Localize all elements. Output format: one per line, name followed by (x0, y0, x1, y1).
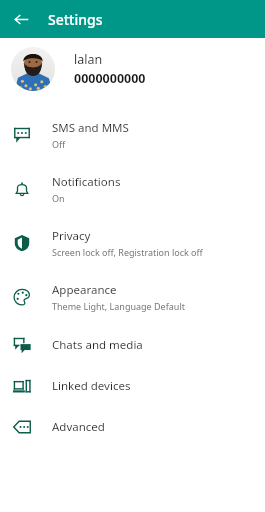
staticText: 0000000000 (74, 70, 146, 87)
staticText: On (52, 192, 65, 204)
staticText: Privacy (52, 228, 91, 244)
staticText: Off (52, 138, 66, 150)
button[interactable]: Chats and media (0, 324, 265, 365)
staticText: Theme Light, Language Default (52, 300, 185, 312)
staticText: Chats and media (52, 337, 143, 353)
button[interactable]: Privacy (0, 216, 265, 270)
button[interactable]: Advanced (0, 406, 265, 447)
staticText: Advanced (52, 419, 105, 435)
staticText: Notifications (52, 174, 121, 190)
staticText: Settings (48, 10, 103, 29)
staticText: Screen lock off, Registration lock off (52, 246, 203, 258)
button[interactable]: Appearance (0, 270, 265, 324)
staticText: Linked devices (52, 378, 131, 394)
staticText: lalan (74, 51, 103, 68)
staticText: SMS and MMS (52, 120, 129, 136)
button[interactable]: Back (8, 6, 34, 32)
button[interactable]: SMS and MMS (0, 108, 265, 162)
button[interactable]: lalan (0, 38, 265, 100)
button[interactable]: Notifications (0, 162, 265, 216)
staticText: Appearance (52, 282, 117, 298)
button[interactable]: Linked devices (0, 365, 265, 406)
